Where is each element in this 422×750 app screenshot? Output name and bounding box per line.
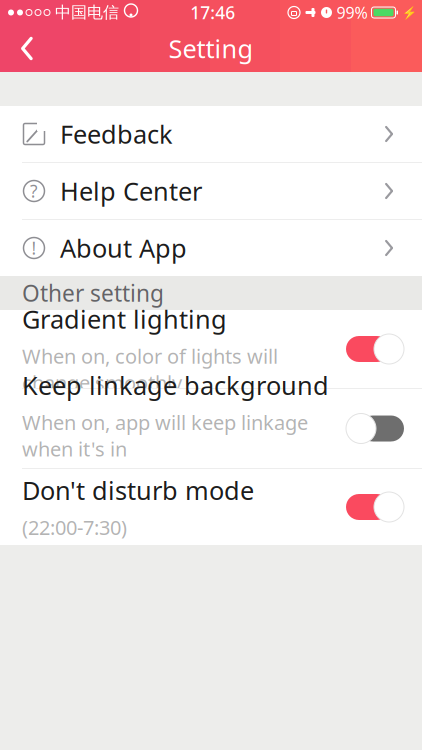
button[interactable]: Keep linkage background <box>0 389 422 468</box>
button[interactable]: ? <box>0 163 422 219</box>
staticText: About App <box>60 231 187 265</box>
button[interactable]: Don't disturb mode <box>0 469 422 545</box>
button[interactable]: ! <box>0 220 422 276</box>
staticText: When on, app will keep linkage when it's… <box>22 409 308 489</box>
staticText: 99% <box>336 2 367 23</box>
staticText: ⚡ <box>402 6 417 19</box>
staticText: Feedback <box>60 117 173 151</box>
staticText: Keep linkage background <box>22 368 329 402</box>
staticText: Don't disturb mode <box>22 473 254 507</box>
button[interactable]: Gradient lighting <box>0 310 422 388</box>
staticText: 中国电信 <box>55 3 119 22</box>
staticText: (22:00-7:30) <box>22 514 127 541</box>
staticText: When on, color of lights will change smo… <box>22 343 278 396</box>
staticText: Other setting <box>22 278 164 308</box>
staticText: ! <box>31 236 36 259</box>
staticText: Gradient lighting <box>22 302 227 336</box>
staticText: ? <box>30 179 38 202</box>
button[interactable]: Back <box>0 25 54 72</box>
button[interactable]: Feedback <box>0 106 422 162</box>
staticText: 17:46 <box>190 1 235 24</box>
staticText: Setting <box>168 32 253 65</box>
staticText: Help Center <box>60 174 202 208</box>
